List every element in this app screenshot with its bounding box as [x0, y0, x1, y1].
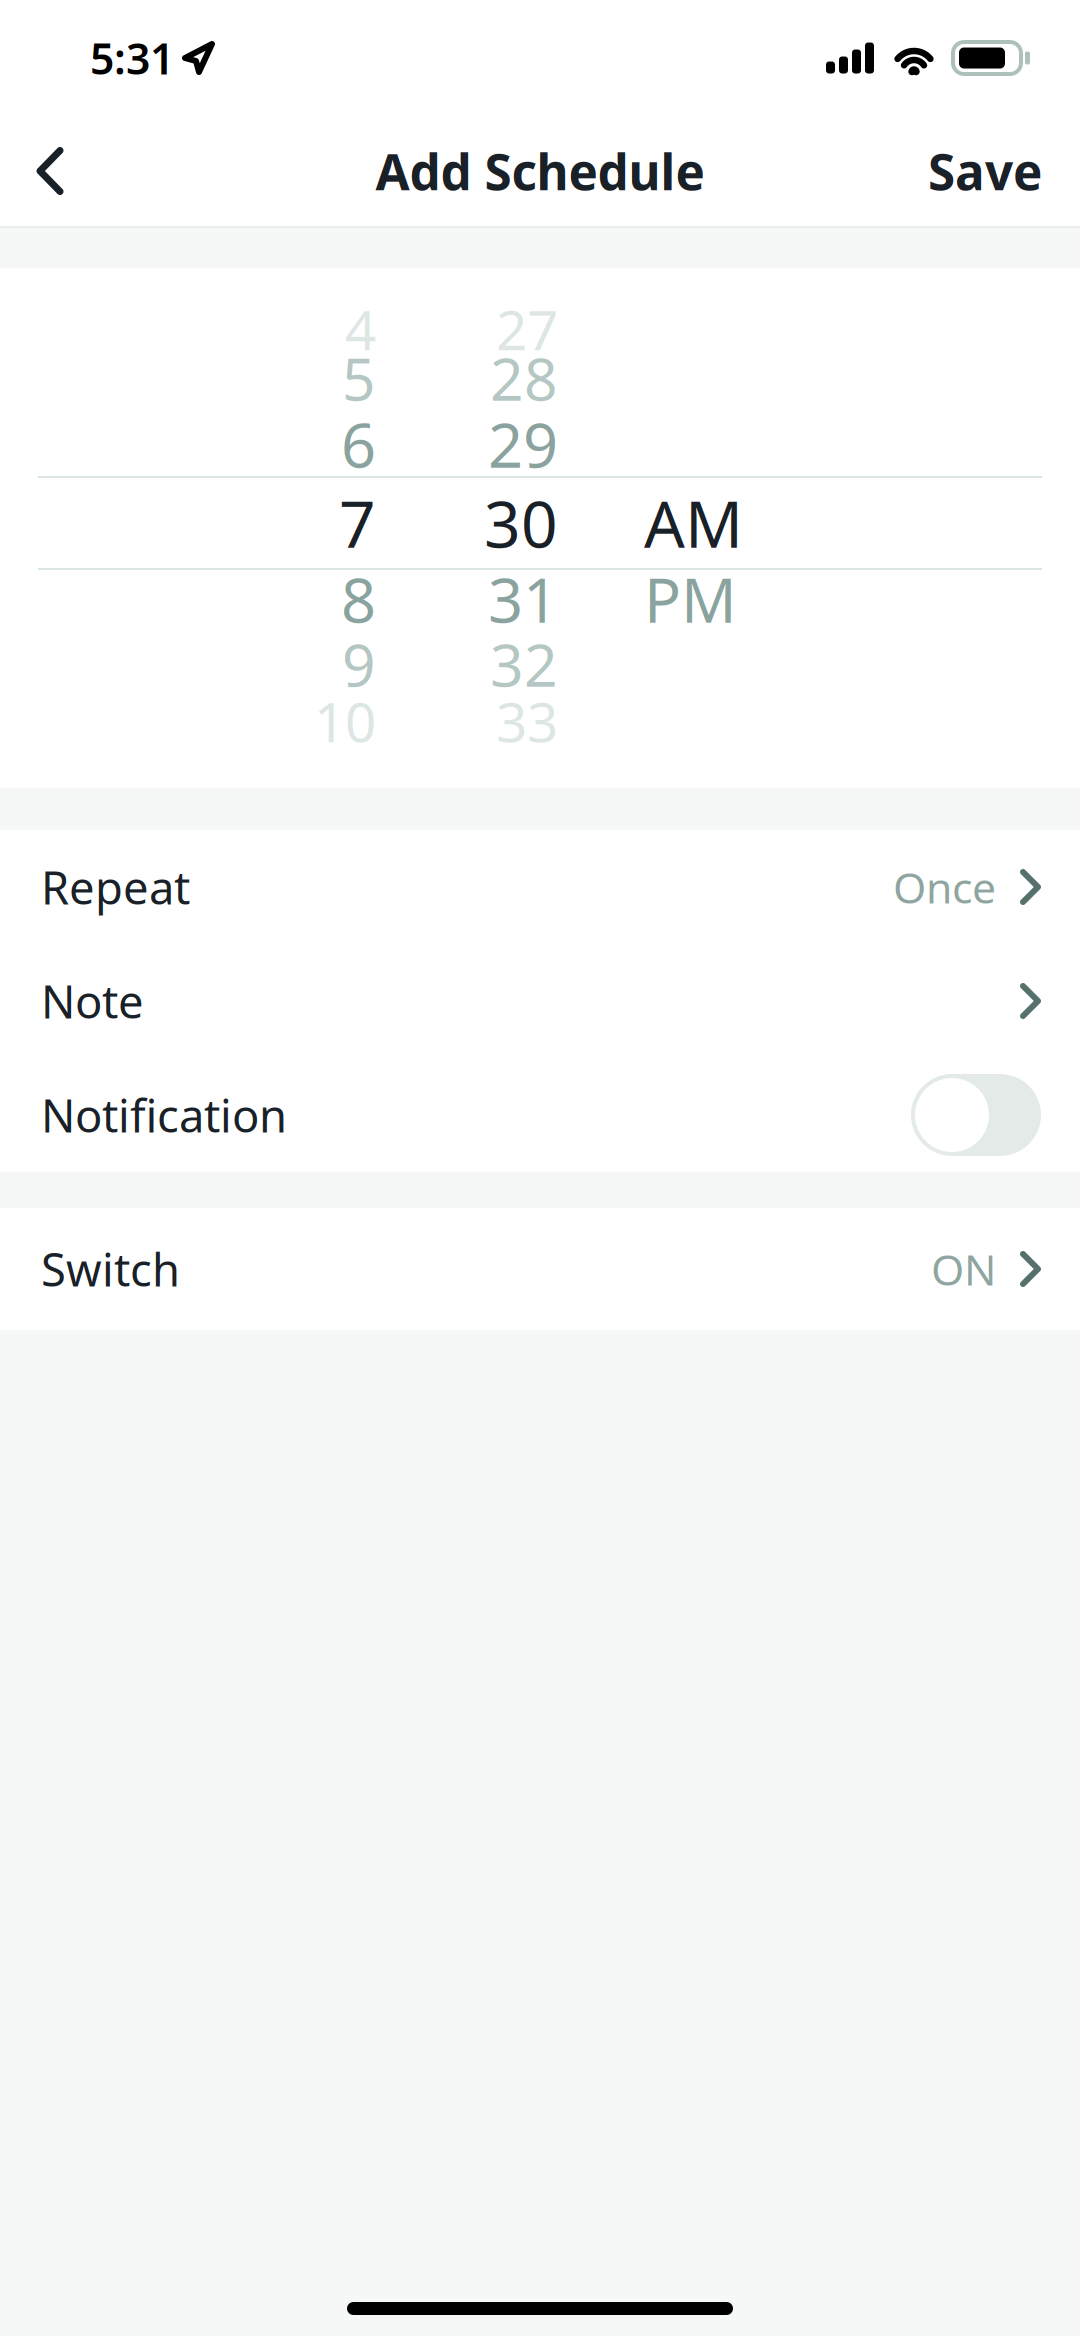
staticText: 5:31 [90, 30, 174, 86]
staticText: 4 [345, 293, 376, 365]
staticText: 9 [342, 625, 376, 703]
staticText: Notification [41, 1085, 287, 1145]
button[interactable]: Repeat [0, 830, 1080, 944]
staticText: Save [928, 138, 1042, 204]
staticText: 33 [496, 685, 558, 757]
staticText: 31 [488, 558, 558, 640]
button[interactable]: Notification, off [911, 1074, 1041, 1156]
staticText: Add Schedule [375, 138, 704, 204]
staticText: 27 [496, 293, 558, 365]
button[interactable]: Note [0, 944, 1080, 1058]
button[interactable]: Back [0, 116, 100, 226]
staticText: 7 [339, 480, 376, 565]
staticText: PM [644, 558, 737, 640]
staticText: 28 [490, 339, 558, 417]
staticText: 30 [484, 480, 558, 565]
staticText: ON [931, 1241, 996, 1297]
staticText: Switch [41, 1239, 180, 1299]
staticText: AM [644, 480, 743, 565]
staticText: 10 [314, 685, 376, 757]
staticText: Once [893, 859, 996, 915]
staticText: 8 [341, 558, 376, 640]
button[interactable]: AM or PM [644, 268, 804, 788]
button[interactable]: Save [890, 116, 1080, 226]
staticText: Note [41, 971, 144, 1031]
button[interactable]: Minute [376, 268, 558, 788]
staticText: 32 [490, 625, 558, 703]
button[interactable]: Hour [248, 268, 376, 788]
staticText: 5 [342, 339, 376, 417]
staticText: Repeat [41, 857, 190, 917]
button[interactable]: Switch [0, 1208, 1080, 1330]
staticText: 29 [488, 403, 558, 485]
staticText: 6 [341, 403, 376, 485]
